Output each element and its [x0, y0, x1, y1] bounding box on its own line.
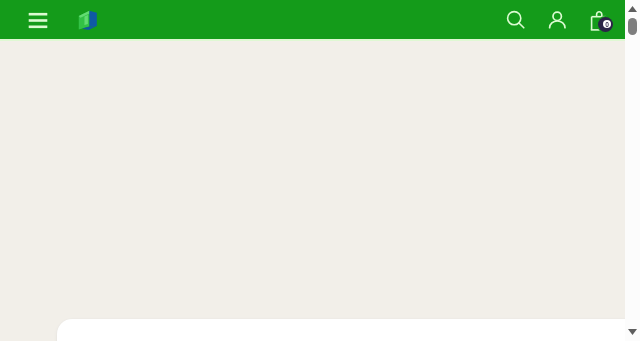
staticText: 0	[605, 20, 609, 28]
button[interactable]: Cart	[589, 5, 615, 34]
button[interactable]: Scroll bar	[625, 0, 640, 341]
button[interactable]: Menu	[22, 3, 54, 36]
button[interactable]: Account	[546, 4, 570, 35]
button[interactable]: Search	[500, 4, 530, 35]
button[interactable]: Home	[78, 10, 97, 30]
